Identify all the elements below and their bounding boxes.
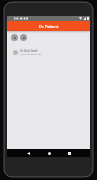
staticText: Dr. Patient: [39, 24, 59, 29]
button[interactable]: Recent apps: [67, 151, 72, 156]
button[interactable]: Add person: [11, 34, 18, 41]
button[interactable]: Dr. Bob Smith: [7, 47, 90, 57]
staticText: A few seconds ago: [20, 52, 42, 55]
staticText: Dr. Bob Smith: [20, 49, 38, 53]
button[interactable]: Back: [26, 151, 31, 156]
button[interactable]: Home: [47, 151, 52, 156]
button[interactable]: Settings: [20, 34, 27, 41]
